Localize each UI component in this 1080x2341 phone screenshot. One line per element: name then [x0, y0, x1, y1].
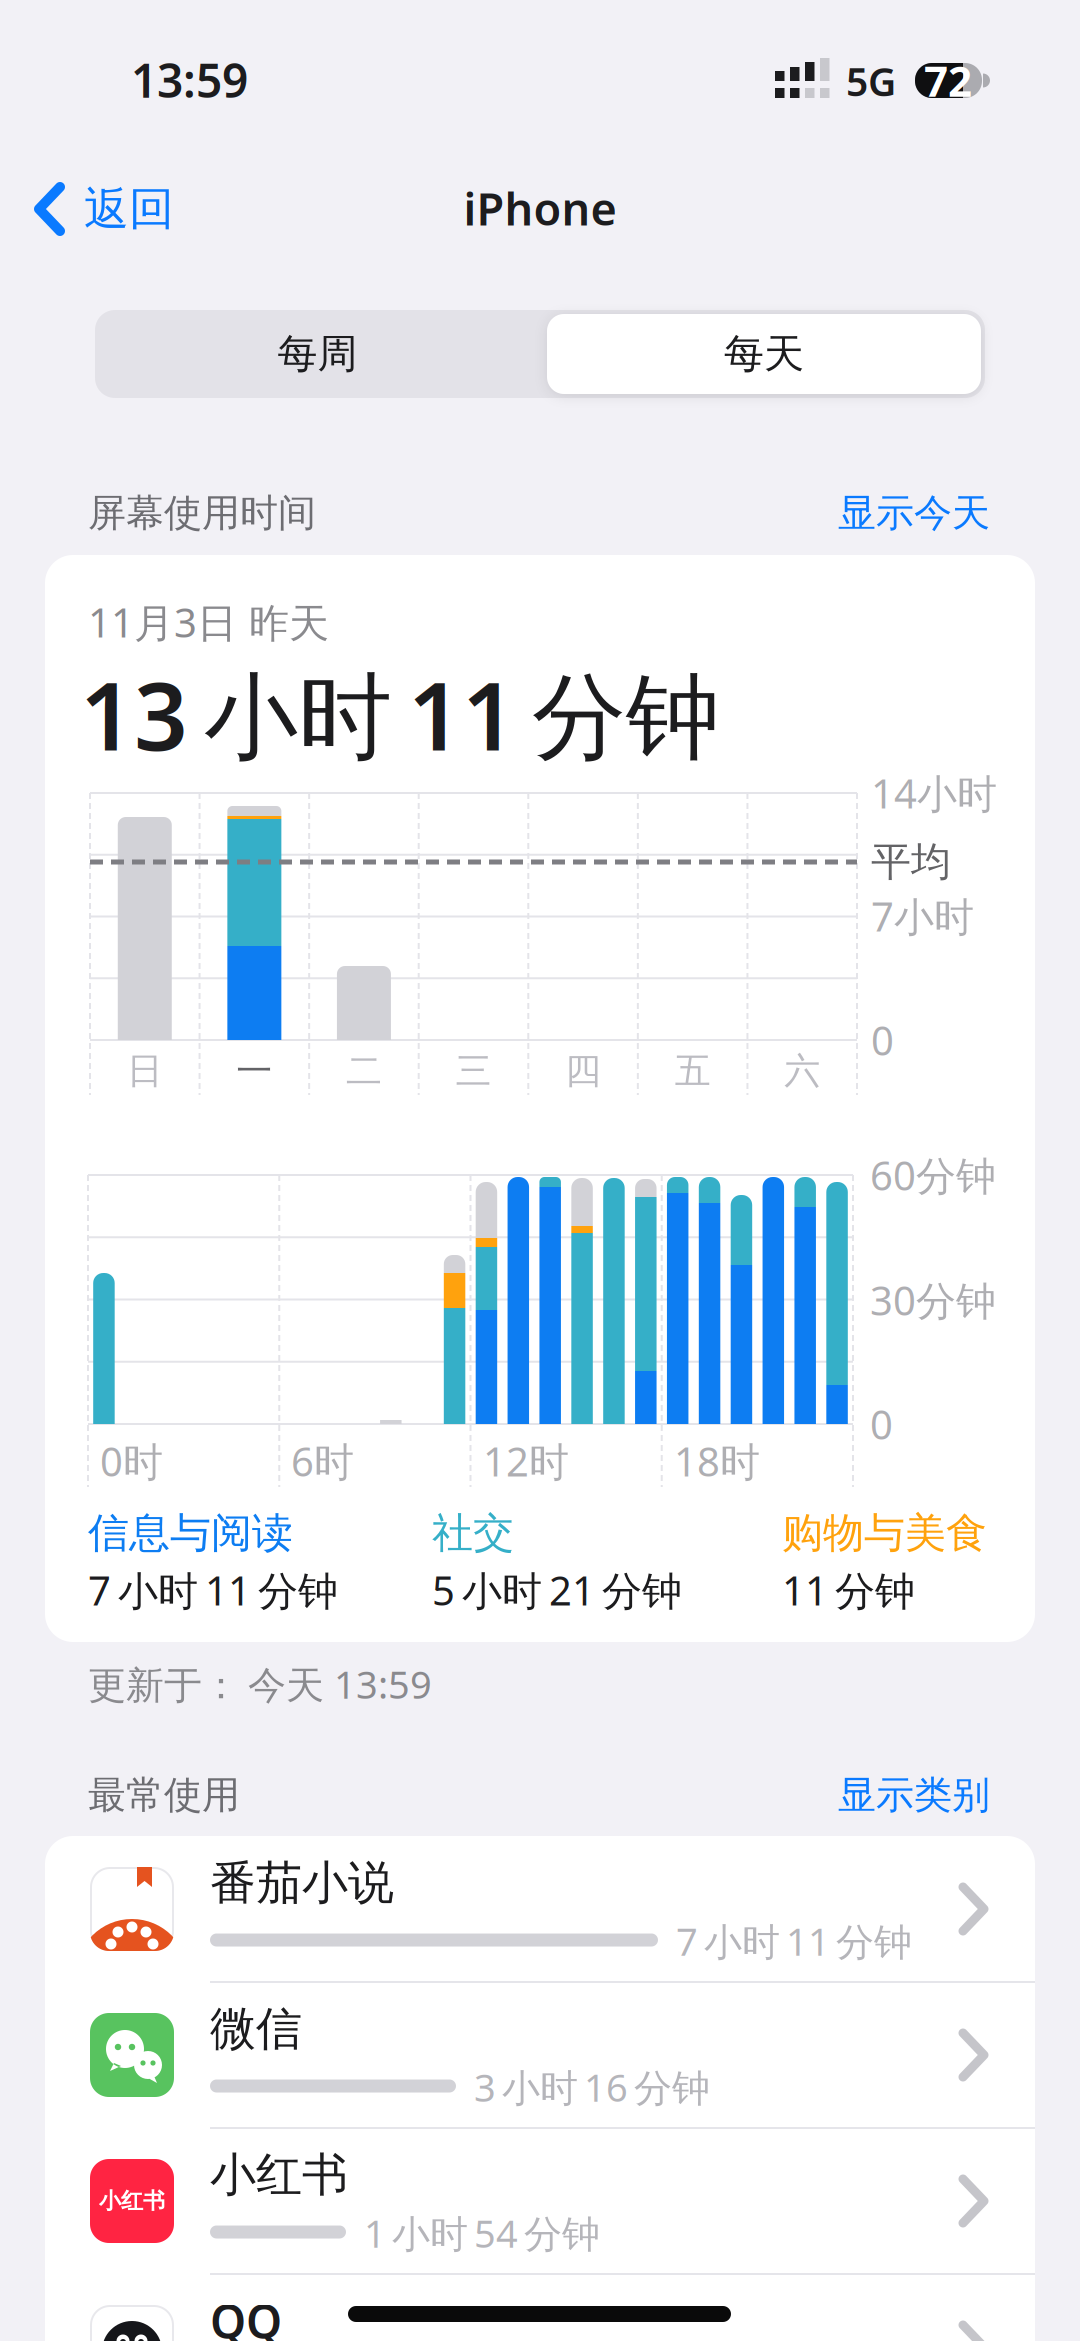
- staticText: 13 小时 11 分钟: [80, 652, 720, 776]
- staticText: 5G: [846, 55, 896, 107]
- staticText: 0时: [100, 1434, 163, 1487]
- staticText: 显示今天: [838, 490, 990, 536]
- staticText: 60分钟: [870, 1148, 996, 1201]
- staticText: 7小时: [871, 889, 974, 942]
- button[interactable]: 返回: [0, 0, 290, 100]
- staticText: 7 小时 11 分钟: [88, 1563, 338, 1616]
- staticText: 五: [675, 1049, 711, 1093]
- staticText: 18时: [674, 1434, 760, 1487]
- staticText: 社交: [432, 1508, 514, 1558]
- staticText: 3 小时 16 分钟: [474, 2062, 710, 2112]
- staticText: 更新于： 今天 13:59: [88, 1659, 432, 1709]
- staticText: 1 小时 54 分钟: [364, 2208, 600, 2258]
- staticText: 5 小时 21 分钟: [432, 1563, 682, 1616]
- staticText: 二: [346, 1049, 382, 1093]
- staticText: 平均: [871, 837, 951, 886]
- button[interactable]: QQ: [45, 2274, 1035, 2341]
- staticText: 六: [784, 1049, 820, 1093]
- staticText: iPhone: [463, 178, 616, 238]
- staticText: 日: [127, 1049, 163, 1093]
- staticText: 12时: [483, 1434, 569, 1487]
- staticText: 14小时: [871, 766, 997, 819]
- staticText: 小红书: [99, 2187, 165, 2214]
- staticText: 30分钟: [870, 1273, 996, 1326]
- staticText: 屏幕使用时间: [88, 490, 316, 536]
- staticText: 四: [565, 1049, 601, 1093]
- staticText: 7 小时 11 分钟: [676, 1916, 912, 1966]
- staticText: 三: [455, 1049, 491, 1093]
- staticText: 11 分钟: [782, 1563, 915, 1616]
- staticText: 每周: [277, 329, 357, 378]
- button[interactable]: 小红书: [45, 2128, 1035, 2274]
- staticText: 0: [870, 1397, 893, 1450]
- button[interactable]: 每周: [95, 310, 540, 398]
- staticText: 11月3日 昨天: [88, 595, 329, 648]
- staticText: 返回: [84, 181, 174, 237]
- staticText: QQ: [210, 2290, 282, 2341]
- button[interactable]: 每天: [547, 314, 981, 394]
- staticText: 0: [871, 1013, 894, 1066]
- staticText: 购物与美食: [782, 1508, 987, 1558]
- staticText: 小红书: [210, 2147, 348, 2203]
- staticText: 6时: [291, 1434, 354, 1487]
- staticText: 微信: [210, 2001, 302, 2057]
- staticText: 番茄小说: [210, 1855, 394, 1911]
- staticText: 显示类别: [838, 1772, 990, 1818]
- staticText: 72: [924, 53, 972, 108]
- staticText: 信息与阅读: [88, 1508, 293, 1558]
- staticText: 每天: [724, 329, 804, 378]
- staticText: 13:59: [131, 49, 248, 111]
- button[interactable]: 微信: [45, 1982, 1035, 2128]
- button[interactable]: 番茄小说: [45, 1836, 1035, 1982]
- staticText: 一: [236, 1049, 272, 1093]
- staticText: 最常使用: [88, 1772, 240, 1818]
